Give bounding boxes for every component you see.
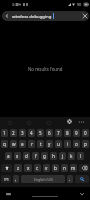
button[interactable]: 1 bbox=[1, 129, 8, 137]
button[interactable]: o bbox=[73, 140, 80, 148]
staticText: c bbox=[36, 165, 39, 171]
button[interactable]: d bbox=[23, 152, 30, 160]
button[interactable]: f bbox=[32, 152, 39, 160]
button[interactable]: e bbox=[19, 140, 26, 148]
staticText: j bbox=[62, 153, 64, 159]
button[interactable]: b bbox=[52, 164, 59, 172]
staticText: r bbox=[31, 141, 33, 147]
staticText: b bbox=[54, 165, 57, 171]
staticText: !?1 bbox=[4, 177, 9, 182]
button[interactable]: Keyboard settings bbox=[65, 117, 74, 126]
button[interactable]: r bbox=[28, 140, 35, 148]
button[interactable]: l bbox=[77, 152, 84, 160]
staticText: 1 bbox=[3, 130, 6, 136]
button[interactable]: c bbox=[34, 164, 41, 172]
button[interactable]: space bbox=[21, 175, 65, 183]
button[interactable]: u bbox=[55, 140, 62, 148]
button[interactable]: t bbox=[37, 140, 44, 148]
staticText: y bbox=[48, 141, 51, 147]
button[interactable]: , bbox=[13, 175, 19, 183]
button[interactable]: 2 bbox=[10, 129, 17, 137]
button[interactable]: v bbox=[43, 164, 50, 172]
button[interactable]: 5 bbox=[37, 129, 44, 137]
button[interactable]: x bbox=[24, 164, 32, 172]
staticText: 5 bbox=[39, 130, 42, 136]
staticText: 0 bbox=[84, 130, 87, 136]
staticText: English (US) bbox=[34, 177, 53, 182]
staticText: 4 bbox=[30, 130, 33, 136]
staticText: 9 bbox=[75, 130, 78, 136]
button[interactable]: shift bbox=[1, 164, 12, 172]
button[interactable]: Stickers bbox=[5, 118, 14, 127]
staticText: x bbox=[27, 165, 30, 171]
button[interactable]: 6 bbox=[46, 129, 53, 137]
button[interactable]: n bbox=[61, 164, 68, 172]
staticText: i bbox=[67, 141, 69, 147]
button[interactable]: j bbox=[59, 152, 66, 160]
staticText: m bbox=[71, 165, 76, 171]
staticText: g bbox=[43, 153, 46, 159]
staticText: wireless debugging bbox=[12, 13, 52, 19]
button[interactable]: h bbox=[50, 152, 57, 160]
button[interactable]: p bbox=[82, 140, 89, 148]
button[interactable]: 9 bbox=[73, 129, 80, 137]
staticText: v bbox=[45, 165, 48, 171]
staticText: d bbox=[25, 153, 28, 159]
staticText: q bbox=[3, 141, 6, 147]
staticText: 3 bbox=[21, 130, 24, 136]
staticText: k bbox=[70, 153, 73, 159]
staticText: 7 bbox=[57, 130, 60, 136]
staticText: 6 bbox=[48, 130, 51, 136]
staticText: t bbox=[40, 141, 42, 147]
button[interactable]: m bbox=[70, 164, 77, 172]
button[interactable]: z bbox=[14, 164, 22, 172]
staticText: 90 bbox=[77, 2, 82, 7]
staticText: , bbox=[15, 176, 17, 182]
button[interactable]: 4 bbox=[28, 129, 35, 137]
button[interactable]: k bbox=[68, 152, 75, 160]
staticText: w bbox=[12, 141, 16, 147]
button[interactable]: Clear search bbox=[80, 11, 89, 21]
staticText: . bbox=[69, 176, 71, 182]
staticText: a bbox=[7, 153, 10, 159]
button[interactable]: Back bbox=[3, 189, 13, 199]
staticText: s bbox=[16, 153, 19, 159]
staticText: z bbox=[17, 165, 20, 171]
button[interactable]: . bbox=[67, 175, 73, 183]
button[interactable]: 8 bbox=[64, 129, 71, 137]
button[interactable]: del bbox=[79, 164, 89, 172]
staticText: e bbox=[21, 141, 24, 147]
button[interactable]: y bbox=[46, 140, 53, 148]
button[interactable]: Hide keyboard bbox=[77, 189, 87, 199]
staticText: o bbox=[75, 141, 78, 147]
button[interactable]: q bbox=[1, 140, 8, 148]
staticText: 8 bbox=[66, 130, 69, 136]
button[interactable]: 3 bbox=[19, 129, 26, 137]
button[interactable]: g bbox=[41, 152, 48, 160]
button[interactable]: 7 bbox=[55, 129, 62, 137]
button[interactable]: GIF bbox=[24, 118, 33, 127]
button[interactable]: a bbox=[5, 152, 12, 160]
staticText: l bbox=[80, 153, 82, 159]
staticText: u bbox=[57, 141, 60, 147]
staticText: p bbox=[84, 141, 87, 147]
staticText: f bbox=[35, 153, 37, 159]
button[interactable]: Emoji bbox=[44, 118, 53, 127]
button[interactable]: 0 bbox=[82, 129, 89, 137]
button[interactable]: i bbox=[64, 140, 71, 148]
button[interactable]: More options bbox=[77, 117, 86, 126]
staticText: 2 bbox=[12, 130, 15, 136]
button[interactable]: sym bbox=[1, 175, 11, 183]
button[interactable]: Back bbox=[2, 11, 11, 21]
staticText: No results found bbox=[28, 66, 63, 72]
button[interactable]: s bbox=[14, 152, 21, 160]
button[interactable]: w bbox=[10, 140, 17, 148]
button[interactable]: search bbox=[75, 175, 89, 183]
staticText: n bbox=[63, 165, 66, 171]
staticText: 3:30 bbox=[12, 2, 20, 7]
staticText: h bbox=[52, 153, 55, 159]
